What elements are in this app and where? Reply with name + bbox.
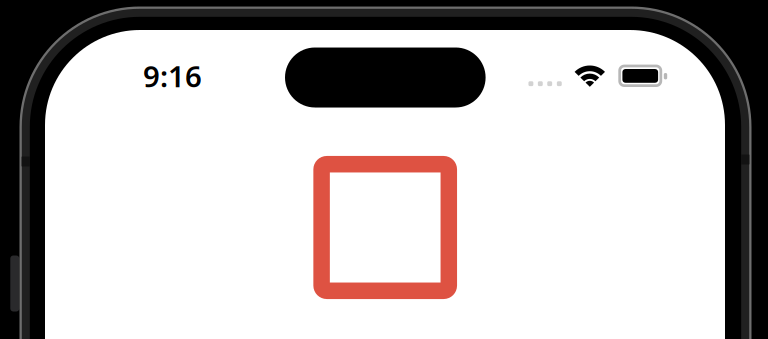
staticText: 9:16 xyxy=(143,56,202,95)
